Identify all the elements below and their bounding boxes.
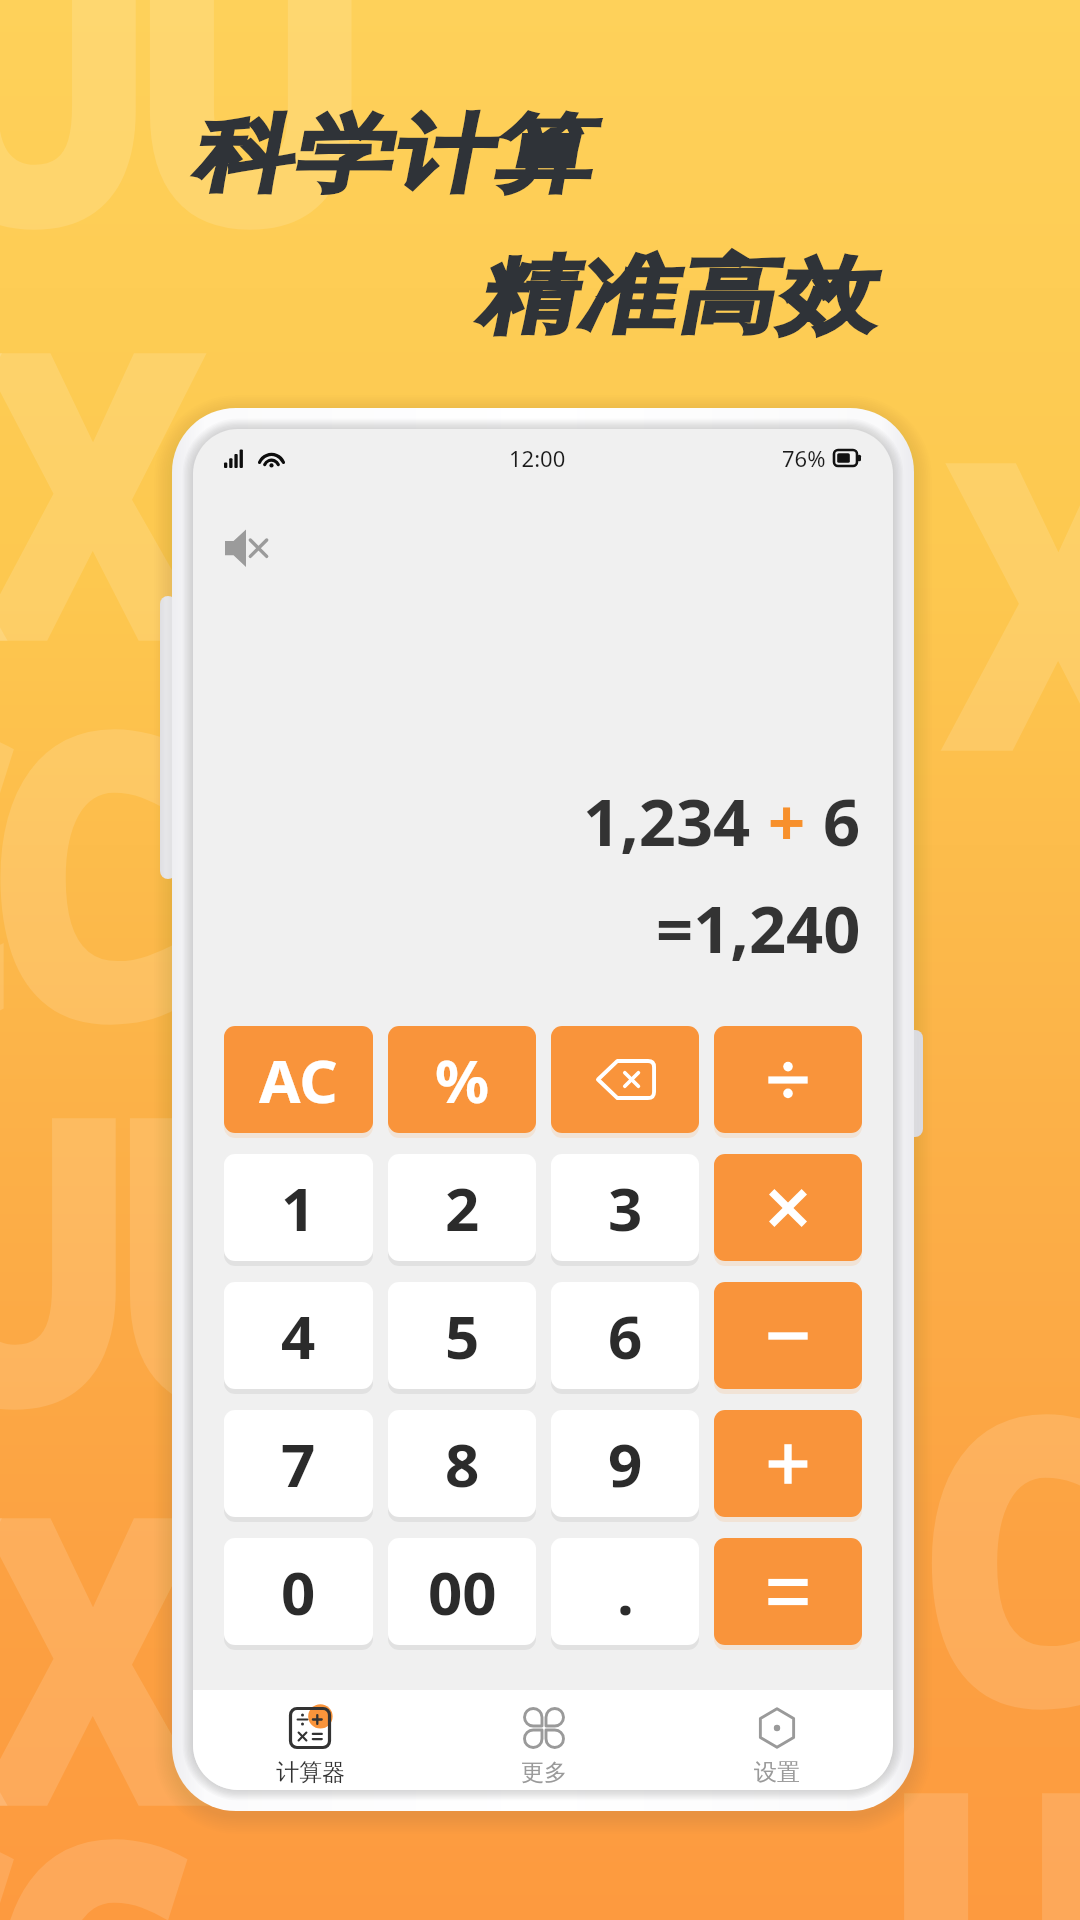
button[interactable]: 7 [224,1410,373,1517]
button[interactable]: 计算器 [193,1690,427,1790]
staticText: + [768,777,806,866]
staticText: =1,240 [656,884,861,973]
staticText: % [435,1039,490,1121]
staticText: 5 [445,1295,480,1377]
button[interactable]: 6 [551,1282,699,1389]
staticText: 1 [281,1167,316,1249]
button[interactable]: Mute [219,522,275,570]
staticText: 6 [608,1295,643,1377]
staticText: 2 [445,1167,480,1249]
staticText: 4 [281,1295,316,1377]
staticText: 计算器 [276,1758,345,1787]
staticText: 7 [281,1423,316,1505]
staticText: 0 [281,1551,316,1633]
button[interactable]: . [551,1538,699,1645]
button[interactable]: 9 [551,1410,699,1517]
staticText: 1,234 [583,777,768,866]
button[interactable]: 2 [388,1154,536,1261]
button[interactable]: Subtract [714,1282,862,1389]
button[interactable]: 1 [224,1154,373,1261]
staticText: 00 [428,1551,497,1633]
staticText: 设置 [754,1758,800,1787]
button[interactable]: Delete [551,1026,699,1133]
button[interactable]: 设置 [660,1690,893,1790]
staticText: AC [259,1039,338,1121]
staticText: 76% [782,443,826,473]
button[interactable]: 4 [224,1282,373,1389]
button[interactable]: 5 [388,1282,536,1389]
button[interactable]: 3 [551,1154,699,1261]
staticText: 8 [445,1423,480,1505]
button[interactable]: 00 [388,1538,536,1645]
staticText: 12:00 [509,443,566,473]
staticText: 3 [608,1167,643,1249]
other: Delete [595,1059,656,1100]
staticText: . [617,1551,634,1633]
button[interactable]: Multiply [714,1154,862,1261]
button[interactable]: Add [714,1410,862,1517]
staticText: 更多 [521,1758,567,1787]
button[interactable]: 8 [388,1410,536,1517]
button[interactable]: All clear [224,1026,373,1133]
staticText: 6 [806,777,861,866]
staticText: 9 [608,1423,643,1505]
button[interactable]: 0 [224,1538,373,1645]
button[interactable]: Percent [388,1026,536,1133]
button[interactable]: Equals [714,1538,862,1645]
button[interactable]: 更多 [427,1690,660,1790]
button[interactable]: Divide [714,1026,862,1133]
